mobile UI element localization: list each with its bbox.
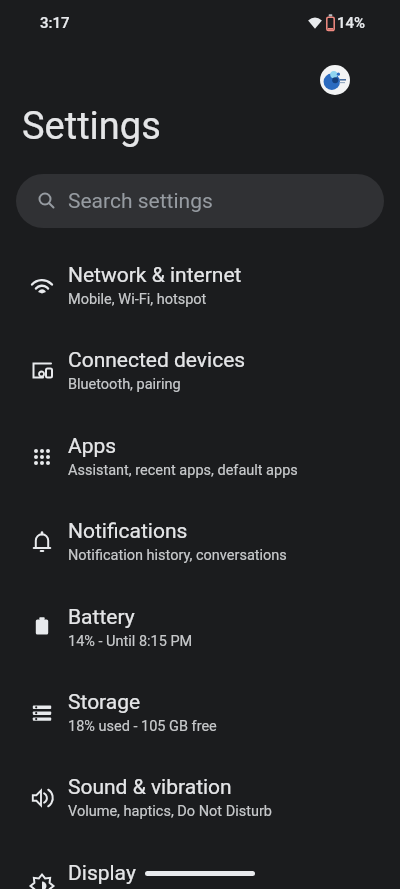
staticText: 3:17 [40, 14, 70, 32]
button[interactable]: Apps [0, 414, 400, 499]
staticText: Network & internet [68, 263, 242, 288]
staticText: Display [68, 861, 136, 886]
staticText: Storage [68, 690, 141, 715]
button[interactable]: Network & internet [0, 243, 400, 328]
staticText: Bluetooth, pairing [68, 376, 181, 393]
staticText: Sound & vibration [68, 775, 232, 800]
button[interactable]: Battery [0, 585, 400, 670]
staticText: Notification history, conversations [68, 547, 287, 564]
button[interactable]: Sound & vibration [0, 755, 400, 840]
staticText: Notifications [68, 519, 188, 544]
staticText: Connected devices [68, 348, 246, 373]
staticText: Volume, haptics, Do Not Disturb [68, 803, 273, 820]
button[interactable]: Search settings [16, 174, 384, 228]
staticText: Search settings [68, 189, 213, 214]
button[interactable]: Storage [0, 670, 400, 755]
staticText: Battery [68, 605, 135, 630]
staticText: 14% [337, 14, 366, 32]
button[interactable] [320, 65, 350, 95]
staticText: 14% - Until 8:15 PM [68, 633, 193, 650]
staticText: Apps [68, 434, 117, 459]
button[interactable]: Notifications [0, 499, 400, 584]
button[interactable]: Display [0, 841, 400, 889]
staticText: Settings [22, 104, 161, 149]
button[interactable]: Connected devices [0, 328, 400, 413]
staticText: Mobile, Wi-Fi, hotspot [68, 291, 207, 308]
staticText: 18% used - 105 GB free [68, 718, 217, 735]
staticText: Assistant, recent apps, default apps [68, 462, 298, 479]
